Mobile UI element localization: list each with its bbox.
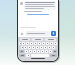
button[interactable]: Key xyxy=(21,46,23,49)
button[interactable]: Key xyxy=(34,42,37,45)
button[interactable]: Key xyxy=(41,50,44,53)
button[interactable]: Key xyxy=(36,46,39,49)
button[interactable]: Key xyxy=(33,50,36,53)
button[interactable]: Key xyxy=(45,50,48,53)
button[interactable]: Key xyxy=(28,46,31,49)
button[interactable]: Key xyxy=(52,46,55,49)
button[interactable]: Key xyxy=(46,42,49,45)
button[interactable]: Key xyxy=(44,46,47,49)
button[interactable] xyxy=(45,38,56,41)
button[interactable]: Key xyxy=(54,42,57,45)
button[interactable]: Shift xyxy=(19,50,24,53)
button[interactable] xyxy=(20,38,30,41)
button[interactable]: Key xyxy=(29,50,32,53)
button[interactable] xyxy=(32,38,43,41)
button[interactable]: Key xyxy=(25,50,28,53)
button[interactable] xyxy=(25,31,50,36)
button[interactable]: Add attachment xyxy=(20,32,24,36)
button[interactable]: Send xyxy=(51,31,56,36)
button[interactable]: Key xyxy=(19,42,21,45)
button[interactable]: Emoji xyxy=(26,54,30,57)
button[interactable]: Backspace xyxy=(53,50,57,53)
button[interactable]: Key xyxy=(24,46,27,49)
button[interactable]: Return xyxy=(50,54,57,57)
button[interactable]: Key xyxy=(30,42,33,45)
button[interactable]: Key xyxy=(37,50,40,53)
button[interactable]: Key xyxy=(32,46,35,49)
button[interactable]: Key xyxy=(26,42,29,45)
button[interactable] xyxy=(27,14,49,15)
button[interactable]: Key xyxy=(38,42,41,45)
button[interactable]: Key xyxy=(49,50,52,53)
button[interactable]: Key xyxy=(42,42,45,45)
button[interactable]: Key xyxy=(22,42,25,45)
button[interactable]: Key xyxy=(48,46,51,49)
button[interactable]: Key xyxy=(40,46,43,49)
button[interactable]: Symbols xyxy=(19,54,25,57)
button[interactable]: Key xyxy=(50,42,53,45)
